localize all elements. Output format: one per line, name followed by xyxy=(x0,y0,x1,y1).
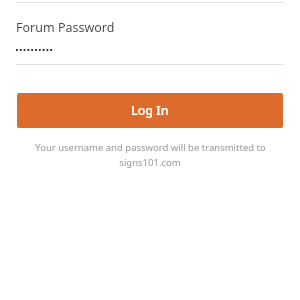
staticText: Log In xyxy=(131,102,169,119)
staticText: signs101.com xyxy=(119,156,181,169)
button[interactable]: Log In xyxy=(17,93,283,128)
staticText: Forum Password xyxy=(16,19,115,36)
button[interactable] xyxy=(16,47,284,53)
staticText: Your username and password will be trans… xyxy=(35,141,266,154)
